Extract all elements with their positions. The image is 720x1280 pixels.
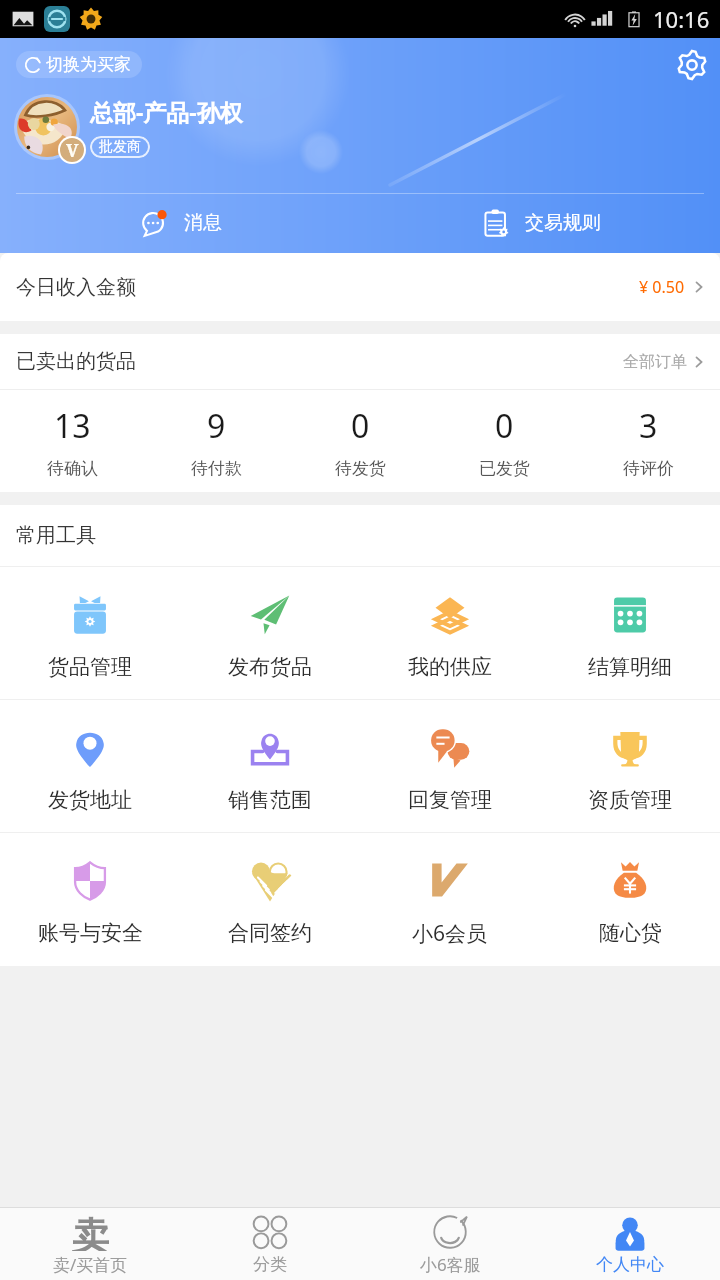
button[interactable]: Settings: [674, 47, 710, 83]
staticText: ¥ 0.50: [639, 276, 685, 298]
staticText: 卖: [72, 1213, 109, 1251]
staticText: 销售范围: [228, 787, 312, 813]
staticText: 总部-产品-孙权: [90, 96, 243, 127]
staticText: 卖/买首页: [53, 1253, 128, 1276]
button[interactable]: 小6会员: [360, 833, 540, 966]
staticText: 0: [495, 404, 514, 448]
button[interactable]: 发货地址: [0, 700, 180, 832]
staticText: 批发商: [99, 138, 141, 156]
staticText: 9: [207, 404, 226, 448]
button[interactable]: 9: [144, 390, 288, 492]
staticText: 资质管理: [588, 787, 672, 813]
button[interactable]: 发布货品: [180, 567, 360, 699]
button[interactable]: 今日收入金额: [0, 253, 720, 321]
button[interactable]: 交易规则: [360, 193, 720, 253]
staticText: 我的供应: [408, 654, 492, 680]
button[interactable]: 已卖出的货品: [0, 334, 720, 389]
staticText: 消息: [184, 211, 222, 235]
staticText: 待评价: [623, 458, 674, 479]
staticText: 发布货品: [228, 654, 312, 680]
button[interactable]: 销售范围: [180, 700, 360, 832]
button[interactable]: 个人中心: [540, 1208, 720, 1280]
button[interactable]: 我的供应: [360, 567, 540, 699]
button[interactable]: 13: [0, 390, 144, 492]
staticText: 全部订单: [623, 352, 687, 372]
button[interactable]: 卖: [0, 1208, 180, 1280]
button[interactable]: 0: [288, 390, 432, 492]
staticText: 待发货: [335, 458, 386, 479]
staticText: 0: [351, 404, 370, 448]
staticText: 已卖出的货品: [16, 349, 136, 374]
button[interactable]: 切换为买家: [16, 51, 142, 78]
staticText: 回复管理: [408, 787, 492, 813]
staticText: 13: [54, 404, 91, 448]
staticText: 待确认: [47, 458, 98, 479]
staticText: 账号与安全: [38, 920, 143, 946]
button[interactable]: 结算明细: [540, 567, 720, 699]
staticText: 发货地址: [48, 787, 132, 813]
staticText: 3: [639, 404, 658, 448]
staticText: 已发货: [479, 458, 530, 479]
button[interactable]: 账号与安全: [0, 833, 180, 966]
button[interactable]: 小6客服: [360, 1208, 540, 1280]
staticText: 合同签约: [228, 920, 312, 946]
button[interactable]: 消息: [0, 193, 360, 253]
staticText: 个人中心: [596, 1254, 664, 1275]
staticText: 常用工具: [16, 523, 96, 548]
staticText: 待付款: [191, 458, 242, 479]
button[interactable]: 0: [432, 390, 576, 492]
staticText: 小6客服: [420, 1253, 481, 1276]
staticText: 10:16: [653, 4, 710, 34]
button[interactable]: 随心贷: [540, 833, 720, 966]
staticText: 切换为买家: [46, 54, 131, 75]
button[interactable]: 3: [576, 390, 720, 492]
staticText: 小6会员: [412, 919, 488, 948]
staticText: 货品管理: [48, 654, 132, 680]
button[interactable]: 资质管理: [540, 700, 720, 832]
staticText: 交易规则: [525, 211, 601, 235]
button[interactable]: 分类: [180, 1208, 360, 1280]
button[interactable]: 合同签约: [180, 833, 360, 966]
button[interactable]: 回复管理: [360, 700, 540, 832]
staticText: 随心贷: [599, 920, 662, 946]
staticText: 分类: [253, 1254, 287, 1275]
staticText: 结算明细: [588, 654, 672, 680]
staticText: 今日收入金额: [16, 275, 136, 300]
staticText: V: [66, 138, 79, 162]
button[interactable]: 货品管理: [0, 567, 180, 699]
